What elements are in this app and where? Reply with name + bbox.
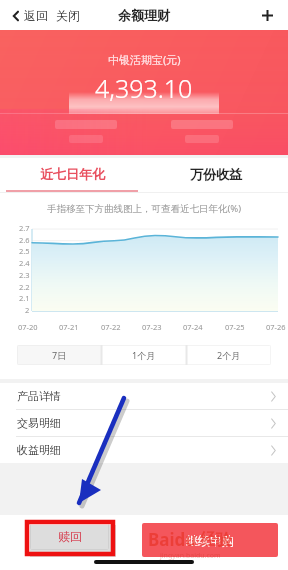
button[interactable]: 继续申购 [142,523,278,557]
button[interactable]: Add [255,3,280,28]
staticText: jingyan.baidu.com [160,551,221,561]
staticText: 关闭 [56,8,80,23]
button[interactable]: 交易明细 [0,410,288,436]
staticText: 2.2 [19,282,30,292]
staticText: 2 [25,305,30,315]
staticText: 2.5 [19,246,30,256]
staticText: 2个月 [217,349,241,361]
button[interactable]: 万份收益 [144,158,288,190]
button[interactable]: 赎回 [30,523,109,550]
button[interactable]: 关闭 [52,3,84,28]
staticText: 经验 [200,530,232,550]
staticText: 2.1 [19,293,30,303]
button[interactable]: 7日 [17,345,101,365]
staticText: 手指移至下方曲线图上，可查看近七日年化(%) [0,202,288,215]
button[interactable]: Back [10,4,50,27]
button[interactable]: 近七日年化 [0,158,144,190]
staticText: 2.7 [19,223,30,233]
staticText: 万份收益 [190,166,242,182]
staticText: 返回 [24,8,48,23]
button[interactable]: 2个月 [187,345,271,365]
staticText: 收益明细 [17,443,61,457]
staticText: 07-23 [142,322,162,332]
button[interactable]: 产品详情 [0,383,288,409]
staticText: 2.3 [19,270,30,280]
staticText: 赎回 [58,529,82,544]
staticText: 07-21 [59,322,79,332]
staticText: 余额理财 [118,7,170,23]
other: Back [12,10,20,22]
staticText: 7日 [52,349,67,361]
staticText: 1个月 [132,349,156,361]
staticText: 2.6 [19,235,30,245]
button[interactable]: 1个月 [102,345,186,365]
staticText: 产品详情 [17,389,61,403]
staticText: 07-20 [18,322,38,332]
staticText: 4,393.10 [95,71,193,105]
staticText: 近七日年化 [40,166,105,182]
staticText: 交易明细 [17,416,61,430]
staticText: 中银活期宝(元) [108,52,181,67]
staticText: 07-22 [101,322,121,332]
button[interactable]: 收益明细 [0,437,288,463]
staticText: 07-26 [266,322,286,332]
staticText: 2.4 [19,258,30,268]
staticText: 07-24 [183,322,203,332]
staticText: 继续申购 [186,533,234,548]
staticText: Baidu [148,528,197,551]
staticText: 07-25 [225,322,245,332]
